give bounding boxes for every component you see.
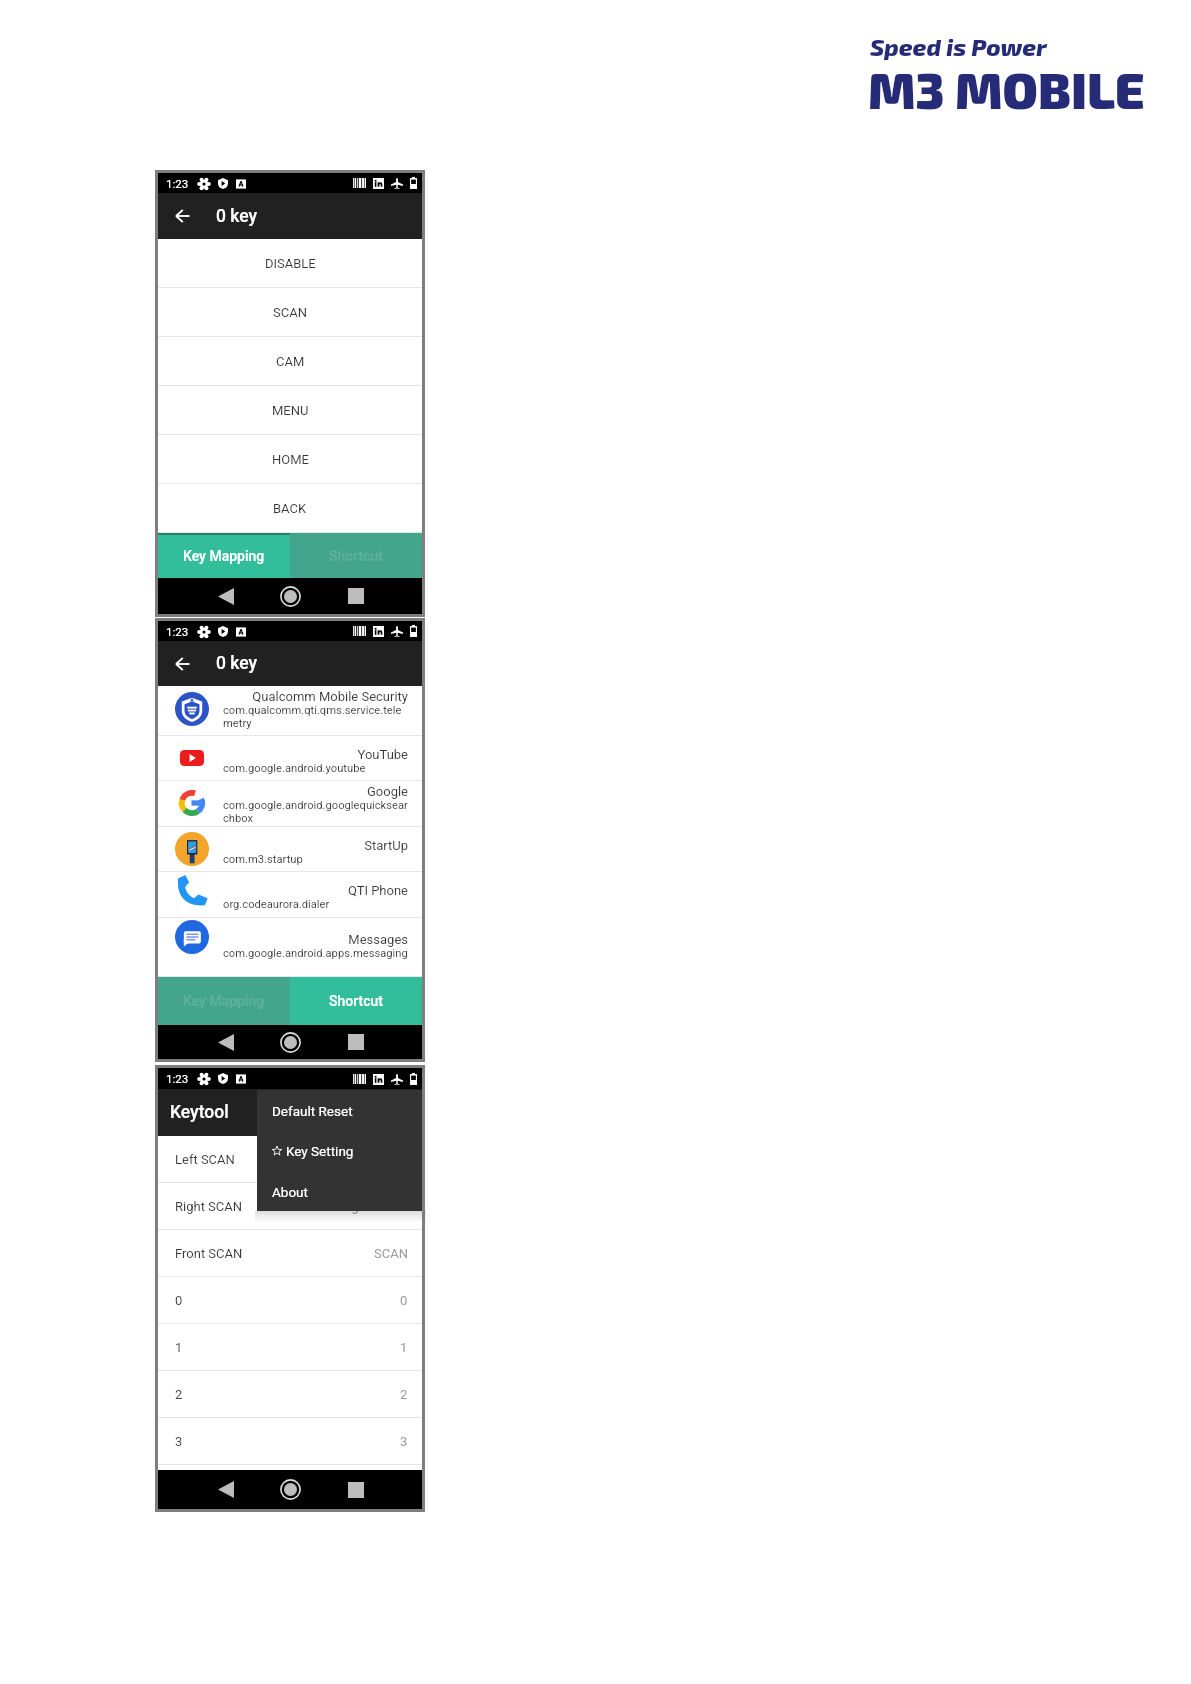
button[interactable]: Back (210, 578, 242, 614)
staticText: MENU (272, 403, 309, 418)
staticText: Right SCAN (340, 1199, 408, 1214)
button[interactable]: Key Mapping (158, 977, 290, 1025)
button[interactable]: CAM (158, 337, 422, 386)
staticText: 3 (400, 1434, 408, 1449)
button[interactable]: Back (210, 1025, 242, 1059)
button[interactable]: Navigate up (158, 641, 206, 686)
button[interactable]: Default Reset (257, 1090, 424, 1131)
staticText: Speed is Power (870, 32, 1047, 61)
staticText: CAM (276, 354, 305, 369)
staticText: HOME (272, 452, 309, 467)
button[interactable]: Qualcomm Mobile Security (158, 686, 422, 736)
staticText: Qualcomm Mobile Security (223, 689, 408, 704)
button[interactable]: Home (274, 1470, 306, 1509)
button[interactable]: SCAN (158, 288, 422, 337)
button[interactable]: Messages (158, 918, 422, 977)
button[interactable]: Google (158, 781, 422, 827)
staticText: Default Reset (272, 1103, 353, 1119)
staticText: Shortcut (329, 548, 383, 564)
button[interactable]: Left SCAN (158, 1136, 422, 1183)
button[interactable]: Back (210, 1470, 242, 1509)
staticText: 0 (400, 1293, 408, 1308)
staticText: org.codeaurora.dialer (223, 898, 408, 911)
staticText: com.google.android.apps.messaging (223, 947, 408, 960)
staticText: BACK (273, 501, 307, 516)
button[interactable]: YouTube (158, 736, 422, 781)
staticText: com.google.android.googlequicksearchbox (223, 799, 408, 825)
button[interactable]: 2 (158, 1371, 422, 1418)
staticText: SCAN (374, 1246, 408, 1261)
staticText: com.qualcomm.qti.qms.service.telemetry (223, 704, 408, 730)
staticText: 1 (400, 1340, 408, 1355)
staticText: Key Mapping (183, 548, 265, 564)
button[interactable]: Key Mapping (158, 533, 290, 578)
staticText: 1:23 (166, 177, 189, 190)
button[interactable]: Home (274, 578, 306, 614)
button[interactable]: Navigate up (158, 193, 206, 239)
staticText: Left SCAN (348, 1152, 408, 1167)
button[interactable]: MENU (158, 386, 422, 435)
staticText: 0 key (216, 653, 258, 674)
staticText: Key Mapping (183, 993, 265, 1009)
button[interactable]: Home (274, 1025, 306, 1059)
staticText: 0 (175, 1293, 183, 1308)
button[interactable]: QTI Phone (158, 872, 422, 918)
staticText: 0 key (216, 206, 258, 227)
button[interactable]: 0 (158, 1277, 422, 1324)
staticText: 2 (175, 1387, 183, 1402)
button[interactable]: BACK (158, 484, 422, 533)
button[interactable]: StartUp (158, 827, 422, 872)
staticText: YouTube (223, 747, 408, 762)
staticText: Messages (223, 932, 408, 947)
staticText: Right SCAN (175, 1199, 243, 1214)
button[interactable]: About (257, 1171, 424, 1212)
staticText: 2 (400, 1387, 408, 1402)
staticText: 1:23 (166, 1072, 189, 1085)
button[interactable]: 3 (158, 1418, 422, 1465)
button[interactable]: Right SCAN (158, 1183, 422, 1230)
staticText: StartUp (223, 838, 408, 853)
staticText: QTI Phone (223, 883, 408, 898)
staticText: M3 MOBILE (868, 59, 1145, 119)
staticText: DISABLE (265, 256, 316, 271)
button[interactable]: Front SCAN (158, 1230, 422, 1277)
staticText: About (272, 1184, 308, 1200)
staticText: Front SCAN (175, 1246, 243, 1261)
staticText: com.google.android.youtube (223, 762, 408, 775)
staticText: Keytool (170, 1102, 229, 1123)
button[interactable]: HOME (158, 435, 422, 484)
staticText: Shortcut (329, 993, 383, 1009)
button[interactable]: Recent apps (340, 1025, 372, 1059)
button[interactable]: Shortcut (290, 977, 422, 1025)
staticText: Google (223, 784, 408, 799)
staticText: 3 (175, 1434, 183, 1449)
button[interactable]: 1 (158, 1324, 422, 1371)
button[interactable]: Key Setting (257, 1131, 424, 1171)
button[interactable]: Recent apps (340, 1470, 372, 1509)
staticText: Left SCAN (175, 1152, 235, 1167)
staticText: 1 (175, 1340, 183, 1355)
staticText: com.m3.startup (223, 853, 408, 866)
staticText: 1:23 (166, 625, 189, 638)
staticText: SCAN (273, 305, 307, 320)
button[interactable]: DISABLE (158, 239, 422, 288)
button[interactable]: Recent apps (340, 578, 372, 614)
staticText: Key Setting (286, 1143, 354, 1159)
button[interactable]: Shortcut (290, 533, 422, 578)
